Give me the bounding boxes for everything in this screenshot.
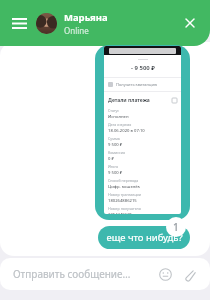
- staticText: Исполнен: [108, 114, 129, 120]
- staticText: 9 500 ₽: [108, 142, 123, 148]
- staticText: Online: [64, 25, 89, 36]
- staticText: Отправить сообщение…: [13, 267, 131, 281]
- button[interactable]: Close: [178, 11, 202, 35]
- staticText: - 9 500 ₽: [131, 64, 155, 72]
- button[interactable]: еще что нибудь?: [98, 226, 190, 249]
- button[interactable]: 1: [166, 217, 186, 237]
- staticText: 9 500 ₽: [108, 170, 123, 176]
- staticText: 180264886215: [108, 198, 137, 204]
- staticText: 1: [173, 220, 179, 234]
- staticText: Детали платежа: [108, 97, 150, 104]
- staticText: еще что нибудь?: [106, 231, 183, 244]
- staticText: Комиссия: [108, 150, 126, 155]
- staticText: Цифр. кошелёк: [108, 184, 140, 190]
- staticText: 0 ₽: [108, 156, 114, 162]
- staticText: Статус: [108, 108, 120, 113]
- staticText: Номер получателя: [108, 206, 141, 211]
- staticText: Итого: [108, 164, 119, 169]
- button[interactable]: Получить квитанцию: [108, 78, 177, 91]
- button[interactable]: Attach file: [178, 263, 200, 285]
- staticText: Марьяна: [64, 11, 108, 24]
- staticText: Номер транзакции: [108, 192, 142, 197]
- staticText: 18.06.2020 в 07:10: [108, 128, 145, 134]
- staticText: Получить квитанцию: [116, 82, 158, 87]
- button[interactable]: Отправить сообщение…: [13, 267, 154, 281]
- button[interactable]: - 9 500 ₽: [95, 45, 190, 220]
- button[interactable]: Insert emoji: [154, 263, 176, 285]
- button[interactable]: Menu: [8, 12, 30, 34]
- staticText: Сумма: [108, 136, 120, 141]
- staticText: Дата и время: [108, 122, 132, 127]
- staticText: 1054440675: [108, 212, 132, 214]
- staticText: Способ перевода: [108, 178, 139, 183]
- button[interactable]: Profile photo: [36, 13, 57, 34]
